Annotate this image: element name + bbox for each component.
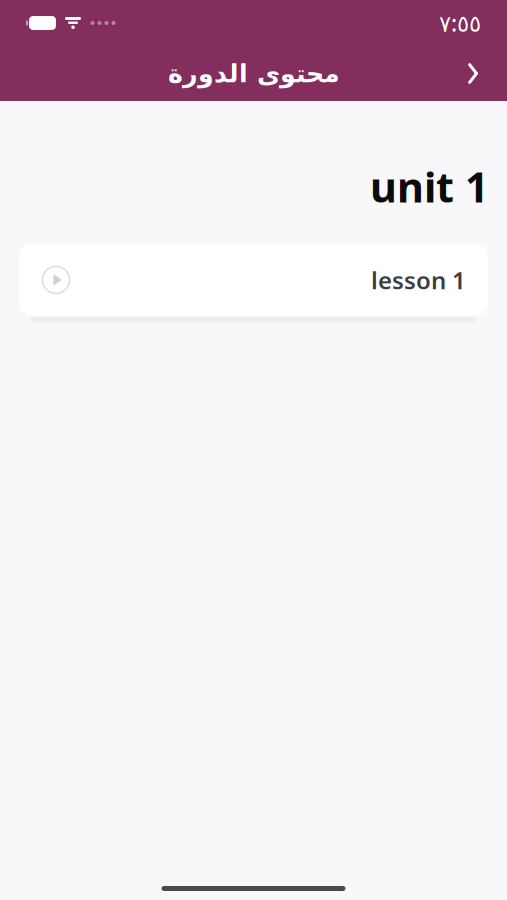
staticText: unit 1 bbox=[370, 159, 489, 214]
button[interactable]: lesson 1 bbox=[19, 244, 488, 316]
staticText: ٧:٥٥ bbox=[439, 8, 481, 38]
staticText: محتوى الدورة bbox=[167, 59, 339, 88]
button[interactable]: Back bbox=[451, 51, 495, 95]
staticText: lesson 1 bbox=[371, 264, 466, 296]
